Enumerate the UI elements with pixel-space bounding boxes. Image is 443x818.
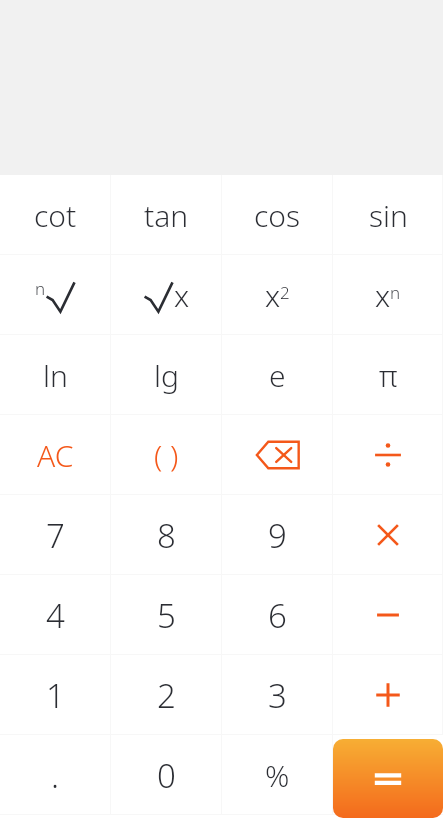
staticText: % — [265, 755, 290, 796]
button[interactable]: AC — [0, 415, 111, 495]
button[interactable]: 7 — [0, 495, 111, 575]
staticText: 8 — [157, 513, 176, 558]
staticText: sin — [369, 195, 408, 236]
button[interactable]: lg — [111, 335, 222, 415]
staticText: ( ) — [154, 435, 179, 476]
button[interactable]: 3 — [222, 655, 333, 735]
other: Backspace — [256, 440, 300, 470]
staticText: x2 — [265, 275, 290, 316]
button[interactable]: 9 — [222, 495, 333, 575]
button[interactable]: square root — [111, 255, 222, 335]
button[interactable]: decimal point — [0, 735, 111, 815]
button[interactable]: x to the n — [333, 255, 443, 335]
staticText: 3 — [268, 673, 287, 718]
staticText: 5 — [157, 593, 176, 638]
button[interactable]: 1 — [0, 655, 111, 735]
staticText: 4 — [46, 593, 65, 638]
button[interactable]: 8 — [111, 495, 222, 575]
staticText: 1 — [46, 673, 65, 718]
button[interactable]: cot — [0, 175, 111, 255]
button[interactable]: 2 — [111, 655, 222, 735]
staticText: cos — [254, 195, 301, 236]
button[interactable]: e — [222, 335, 333, 415]
button[interactable]: tan — [111, 175, 222, 255]
button[interactable]: divide — [333, 415, 443, 495]
staticText: AC — [37, 435, 74, 476]
other: Minus — [375, 602, 401, 628]
button[interactable]: nth root — [0, 255, 111, 335]
staticText: lg — [154, 355, 179, 396]
button[interactable]: backspace — [222, 415, 333, 495]
button[interactable]: parentheses — [111, 415, 222, 495]
staticText: x — [174, 275, 190, 316]
staticText: n — [35, 277, 46, 300]
button[interactable]: ln — [0, 335, 111, 415]
button[interactable]: minus — [333, 575, 443, 655]
button[interactable]: multiply — [333, 495, 443, 575]
staticText: 2 — [157, 673, 176, 718]
button[interactable]: plus — [333, 655, 443, 735]
staticText: . — [51, 753, 60, 798]
button[interactable]: Equals — [333, 739, 443, 818]
staticText: 0 — [157, 753, 176, 798]
staticText: ln — [43, 355, 68, 396]
staticText: 9 — [268, 513, 287, 558]
button[interactable]: cos — [222, 175, 333, 255]
button[interactable]: sin — [333, 175, 443, 255]
button[interactable]: pi — [333, 335, 443, 415]
button[interactable]: 6 — [222, 575, 333, 655]
other: Multiply — [375, 522, 401, 548]
staticText: 6 — [268, 593, 287, 638]
staticText: e — [269, 355, 286, 396]
button[interactable]: 5 — [111, 575, 222, 655]
other: Plus — [374, 681, 402, 709]
staticText: xn — [375, 275, 401, 316]
button[interactable]: 4 — [0, 575, 111, 655]
button[interactable]: percent — [222, 735, 333, 815]
button[interactable]: 0 — [111, 735, 222, 815]
other: Divide — [371, 438, 405, 472]
staticText: π — [379, 355, 398, 396]
staticText: cot — [34, 195, 77, 236]
staticText: 7 — [46, 513, 65, 558]
button[interactable]: x squared — [222, 255, 333, 335]
staticText: tan — [144, 195, 189, 236]
